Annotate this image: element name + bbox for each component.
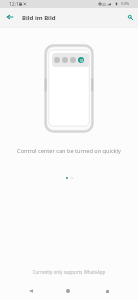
staticText: 53% — [121, 1, 130, 7]
staticText: Currently only supports WhatsApp — [0, 269, 138, 275]
button[interactable]: Search — [123, 10, 138, 25]
staticText: 4G — [102, 2, 107, 7]
button[interactable]: Recent apps — [99, 283, 115, 299]
button[interactable]: Back — [2, 9, 17, 24]
staticText: Bild im Bild — [22, 14, 56, 22]
staticText: 12:19 — [9, 1, 22, 8]
button[interactable]: Home — [60, 283, 76, 299]
button[interactable]: Back — [23, 283, 39, 299]
staticText: Control center can be turned on quickly — [0, 147, 138, 155]
